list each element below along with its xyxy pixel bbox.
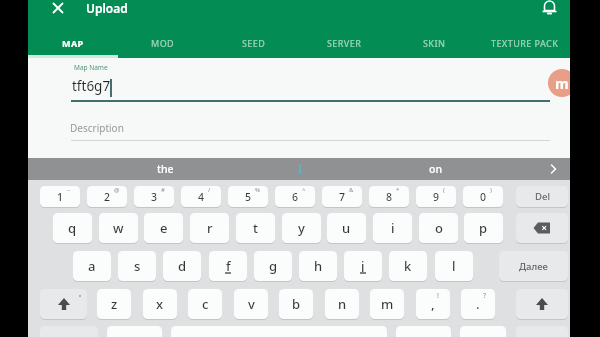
button[interactable]: t [236,213,275,243]
button[interactable]: . [461,289,495,319]
staticText: 4 [198,190,205,204]
button[interactable]: y [282,213,321,243]
staticText: MOD [151,37,175,49]
button[interactable] [544,158,564,180]
staticText: Upload [86,0,128,16]
staticText: k [404,257,412,275]
button[interactable]: Del [516,186,568,207]
staticText: m [381,295,394,313]
staticText: y [298,219,305,237]
button[interactable]: 5 [228,186,268,207]
staticText: j [361,257,365,275]
button[interactable]: z [97,289,131,319]
staticText: o [435,219,443,237]
button[interactable]: SKIN [389,32,479,54]
button[interactable]: w [99,213,138,243]
button[interactable]: p [464,213,503,243]
button[interactable]: MOD [118,32,208,54]
button[interactable] [40,289,87,319]
staticText: * [396,186,400,194]
staticText: r [207,219,213,237]
button[interactable]: c [188,289,222,319]
button[interactable]: 3 [134,186,174,207]
button[interactable]: m [548,69,576,97]
button[interactable]: 2 [87,186,127,207]
button[interactable]: n [325,289,359,319]
staticText: ~ [67,186,71,194]
button[interactable]: b [279,289,313,319]
button[interactable]: m [370,289,404,319]
button[interactable]: 0 [463,186,503,207]
button[interactable]: I [270,158,330,180]
button[interactable]: l [435,251,473,281]
button[interactable]: on [330,158,540,180]
button[interactable] [516,289,568,319]
button[interactable]: d [163,251,201,281]
staticText: SKIN [423,37,446,49]
button[interactable]: 8 [369,186,409,207]
button[interactable]: i [373,213,412,243]
button[interactable]: 6 [275,186,315,207]
staticText: # [161,186,165,194]
staticText: a [88,257,96,275]
button[interactable]: SERVER [299,32,389,54]
staticText: x [156,295,164,313]
staticText: Del [535,190,550,203]
staticText: SERVER [327,37,362,49]
button[interactable] [48,0,68,18]
button[interactable]: e [144,213,183,243]
button[interactable] [541,0,558,17]
staticText: . [476,295,480,313]
staticText: tft6g7 [72,77,111,95]
button[interactable]: q [53,213,92,243]
button[interactable]: MAP [28,32,118,54]
button[interactable]: j [344,251,382,281]
button[interactable]: the [60,158,270,180]
button[interactable]: f [209,251,247,281]
staticText: u [342,219,351,237]
staticText: I [298,162,302,176]
button[interactable]: 1 [40,186,80,207]
staticText: h [314,257,323,275]
staticText: & [349,186,354,194]
button[interactable]: a [73,251,111,281]
staticText: SEED [242,37,266,49]
staticText: 1 [57,190,64,204]
button[interactable]: o [419,213,458,243]
button[interactable]: 9 [416,186,456,207]
button[interactable]: 4 [181,186,221,207]
staticText: % [255,186,260,194]
button[interactable] [460,326,506,337]
button[interactable]: u [327,213,366,243]
button[interactable]: k [389,251,427,281]
button[interactable]: x [143,289,177,319]
button[interactable]: s [118,251,156,281]
button[interactable]: g [254,251,292,281]
staticText: d [178,257,187,275]
button[interactable]: Далее [499,251,568,281]
button[interactable]: h [299,251,337,281]
button[interactable] [516,213,568,243]
staticText: ? [483,291,487,301]
button[interactable]: , [416,289,450,319]
staticText: @ [114,186,120,194]
staticText: p [479,219,488,237]
staticText: g [269,257,278,275]
button[interactable]: r [190,213,229,243]
staticText: 3 [151,190,158,204]
staticText: the [157,162,174,176]
button[interactable]: TEXTURE PACK [480,32,570,54]
button[interactable]: 7 [322,186,362,207]
staticText: n [338,295,347,313]
button[interactable]: SEED [209,32,299,54]
button[interactable]: v [234,289,268,319]
staticText: 5 [245,190,252,204]
staticText: m [555,74,569,93]
